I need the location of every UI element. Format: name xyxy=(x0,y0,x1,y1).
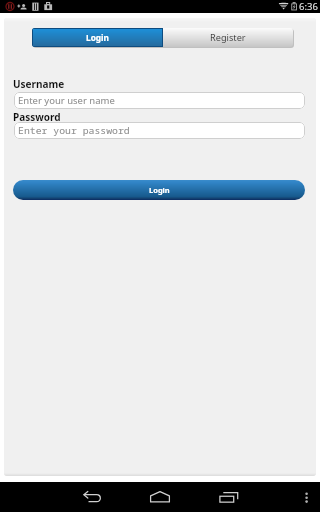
staticText: Login xyxy=(149,185,170,195)
staticText: Username xyxy=(13,77,65,91)
staticText: Enter your user name xyxy=(18,94,115,107)
staticText: Register xyxy=(210,31,246,44)
button[interactable]: Enter your user name xyxy=(14,92,305,109)
button[interactable]: Login xyxy=(13,180,305,200)
staticText: 6:36 xyxy=(299,0,318,13)
button[interactable]: Register xyxy=(163,28,293,47)
staticText: Password xyxy=(13,110,61,124)
button[interactable]: Home xyxy=(142,482,178,512)
button[interactable]: Recent apps xyxy=(210,482,247,512)
button[interactable]: Back xyxy=(74,482,110,512)
button[interactable]: Login xyxy=(32,28,163,47)
button[interactable]: Enter your password xyxy=(14,122,305,139)
staticText: Login xyxy=(86,32,109,43)
staticText: Enter your password xyxy=(18,124,130,137)
button[interactable]: More options xyxy=(296,482,318,512)
